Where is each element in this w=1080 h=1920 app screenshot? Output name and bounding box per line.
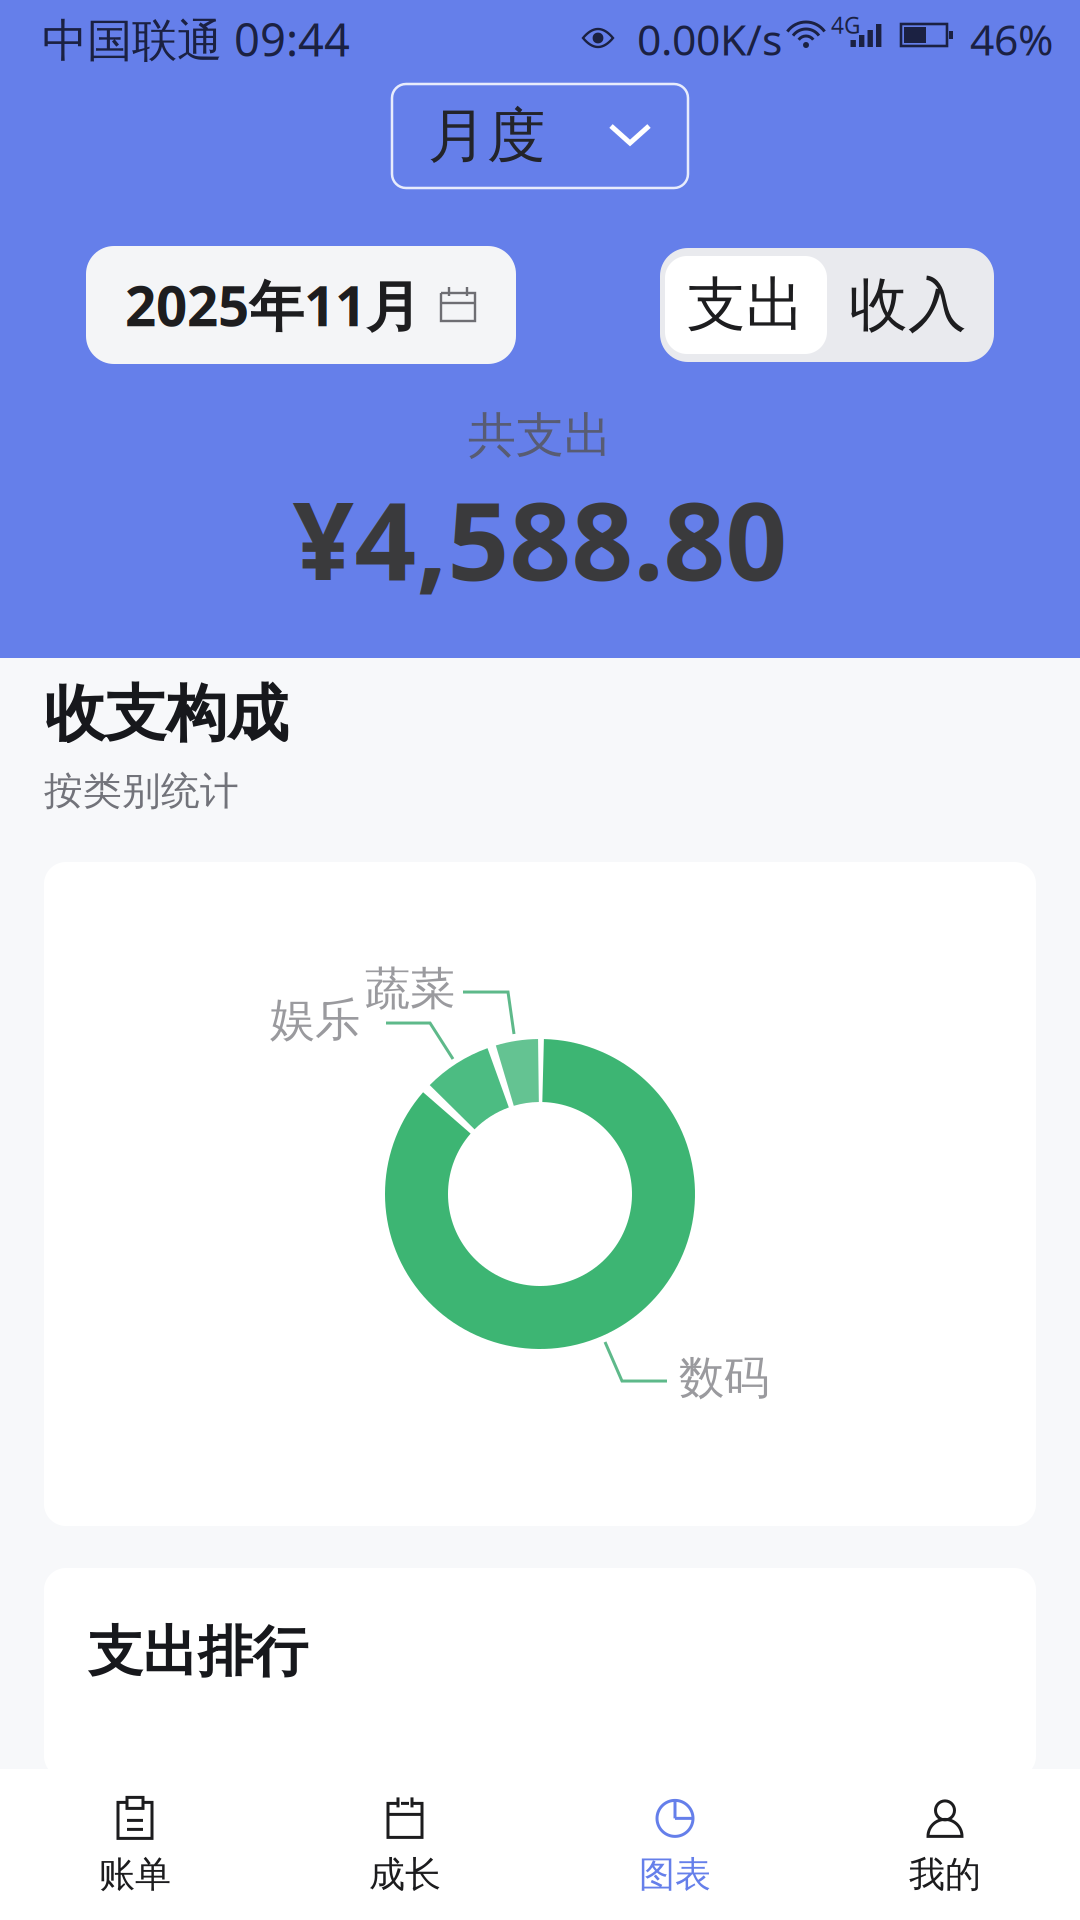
- button[interactable]: 我的: [810, 1772, 1080, 1917]
- staticText: 支出: [687, 269, 805, 341]
- staticText: 按类别统计: [44, 767, 239, 815]
- staticText: 0.00K/s: [637, 11, 782, 67]
- staticText: 收支构成: [44, 676, 288, 752]
- staticText: 支出排行: [88, 1618, 308, 1685]
- button[interactable]: 月度: [392, 84, 688, 188]
- staticText: 收入: [849, 269, 967, 341]
- button[interactable]: 成长: [270, 1772, 540, 1917]
- staticText: 月度: [428, 100, 546, 172]
- staticText: 4G: [831, 10, 861, 40]
- staticText: ¥4,588.80: [292, 467, 787, 610]
- button[interactable]: 账单: [0, 1772, 270, 1917]
- staticText: 2025年11月: [125, 269, 421, 341]
- staticText: 中国联通 09:44: [42, 9, 350, 69]
- button[interactable]: 图表: [540, 1772, 810, 1917]
- staticText: 账单: [99, 1852, 171, 1897]
- staticText: 共支出: [468, 406, 612, 465]
- staticText: 46%: [970, 11, 1053, 67]
- button[interactable]: 收入: [827, 256, 989, 354]
- staticText: 娱乐: [270, 992, 360, 1048]
- staticText: 数码: [679, 1350, 769, 1406]
- staticText: 图表: [639, 1852, 711, 1897]
- staticText: 蔬菜: [365, 961, 455, 1017]
- staticText: 我的: [909, 1852, 981, 1897]
- staticText: 成长: [369, 1852, 441, 1897]
- button[interactable]: 支出: [665, 256, 827, 354]
- button[interactable]: 2025年11月: [86, 246, 516, 364]
